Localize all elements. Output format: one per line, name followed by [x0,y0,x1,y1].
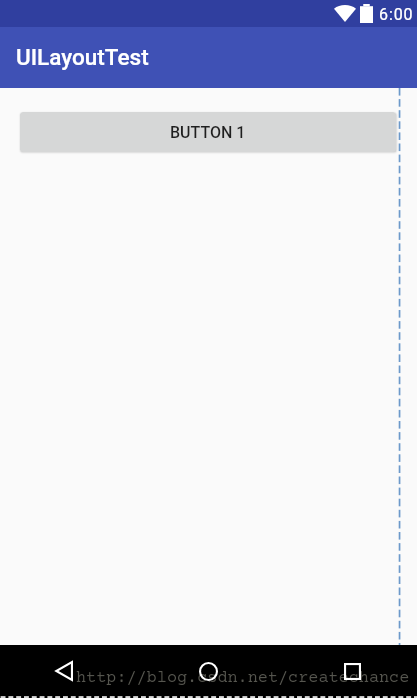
button[interactable]: Home [192,655,224,687]
button[interactable]: BUTTON 1 [20,112,396,152]
staticText: BUTTON 1 [170,123,246,142]
staticText: http://blog.csdn.net/createchance [76,669,410,688]
staticText: UILayoutTest [16,44,149,70]
button[interactable]: Recent apps [336,655,368,687]
staticText: 6:00 [379,5,414,24]
button[interactable]: Back [48,655,80,687]
